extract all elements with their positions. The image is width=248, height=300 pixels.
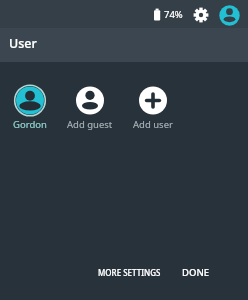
staticText: Add guest [67, 118, 113, 131]
staticText: DONE [182, 266, 210, 279]
button[interactable]: Add guest [60, 82, 120, 131]
staticText: 74% [164, 8, 183, 21]
staticText: Add user [133, 118, 173, 131]
staticText: Gordon [13, 118, 47, 131]
staticText: User [9, 35, 37, 52]
button[interactable] [219, 5, 240, 26]
button[interactable]: MORE SETTINGS [94, 263, 165, 282]
button[interactable]: Gordon [0, 82, 60, 131]
button[interactable]: Add user [123, 82, 183, 131]
staticText: MORE SETTINGS [98, 267, 161, 278]
button[interactable] [193, 7, 209, 23]
button[interactable]: DONE [178, 262, 214, 283]
